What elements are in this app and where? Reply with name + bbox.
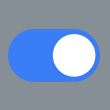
button[interactable]: Toggle [8,29,100,82]
